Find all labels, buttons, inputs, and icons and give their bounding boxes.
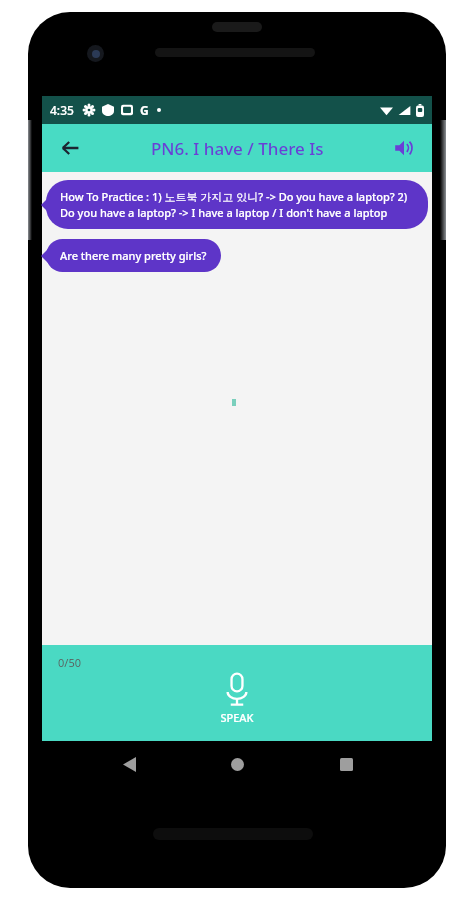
button[interactable]: How To Practice : 1) 노트북 가지고 있니? -> Do y…: [46, 180, 428, 229]
button[interactable]: SPEAK: [202, 669, 272, 729]
button[interactable]: Back: [50, 128, 90, 168]
button[interactable]: Back: [107, 742, 151, 786]
button[interactable]: Home: [215, 742, 259, 786]
staticText: 0/50: [58, 655, 81, 670]
button[interactable]: Are there many pretty girls?: [46, 239, 221, 272]
staticText: G: [140, 102, 149, 118]
staticText: Are there many pretty girls?: [60, 248, 207, 263]
button[interactable]: Play sound: [384, 128, 424, 168]
staticText: SPEAK: [220, 710, 254, 725]
staticText: PN6. I have / There Is: [151, 137, 324, 160]
staticText: 4:35: [50, 102, 74, 118]
button[interactable]: Recent apps: [324, 742, 368, 786]
staticText: How To Practice : 1) 노트북 가지고 있니? -> Do y…: [60, 189, 414, 220]
